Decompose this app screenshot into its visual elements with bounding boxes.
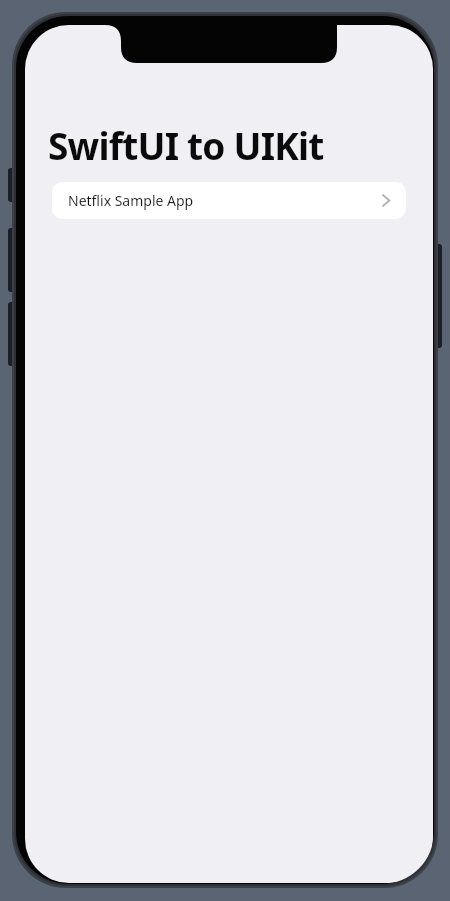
- staticText: SwiftUI to UIKit: [48, 120, 324, 170]
- staticText: Netflix Sample App: [68, 191, 194, 210]
- other: Open Netflix Sample App: [382, 194, 390, 207]
- button[interactable]: Netflix Sample App: [52, 182, 406, 219]
